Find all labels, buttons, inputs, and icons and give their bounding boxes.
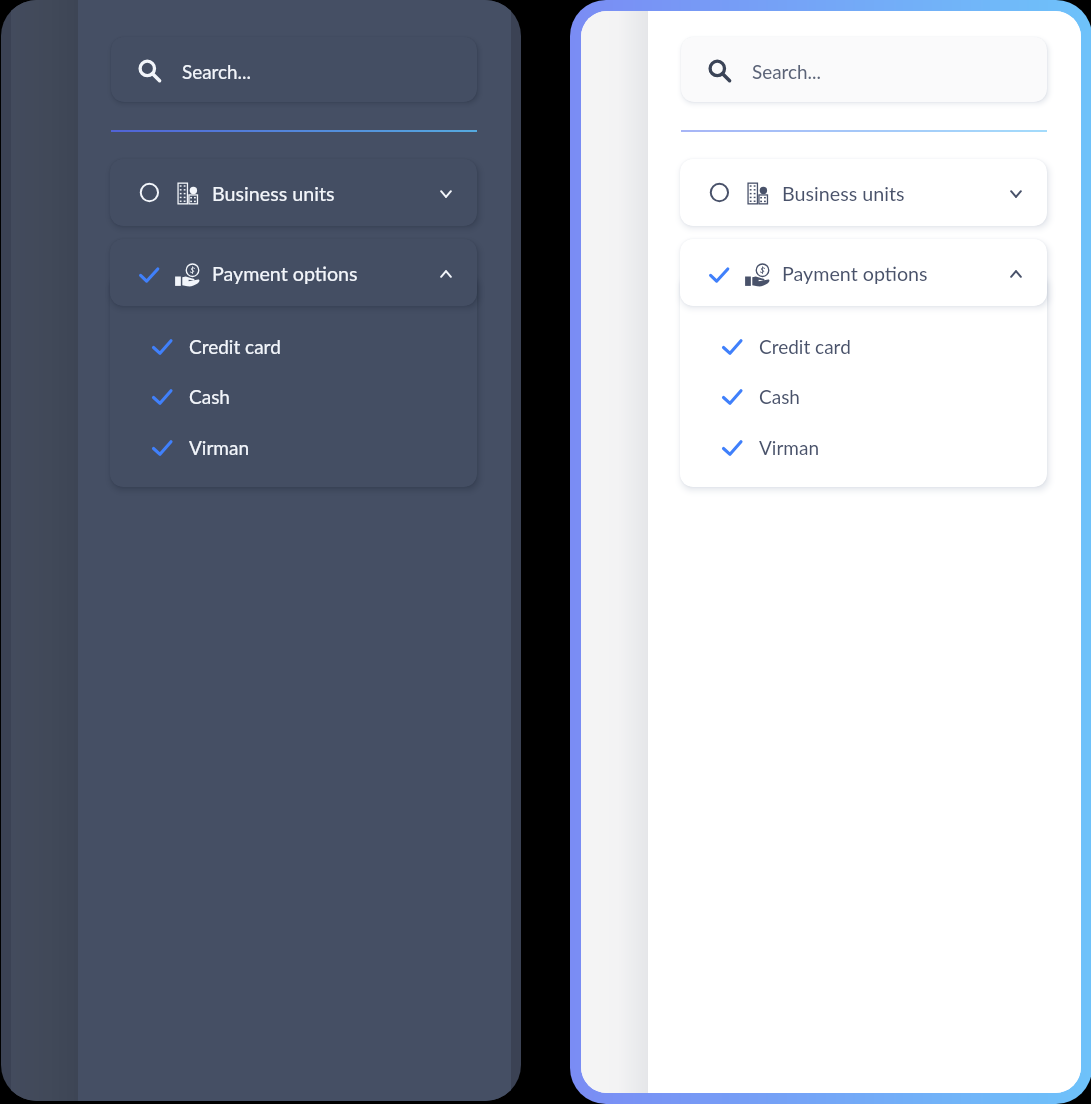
button[interactable]: Payment options	[110, 239, 477, 306]
staticText: Business units	[212, 182, 335, 206]
staticText: Cash	[189, 385, 230, 408]
button[interactable]: Payment options	[680, 239, 1047, 306]
button[interactable]: Virman	[110, 423, 477, 473]
button[interactable]: Expand	[426, 174, 466, 214]
staticText: Virman	[759, 436, 820, 459]
staticText: Virman	[189, 436, 250, 459]
staticText: Search...	[752, 60, 821, 83]
button[interactable]: Credit card	[110, 322, 477, 372]
button[interactable]: Business units	[110, 159, 477, 226]
staticText: Cash	[759, 385, 800, 408]
button[interactable]: Search	[111, 37, 477, 102]
button[interactable]: Collapse	[426, 254, 466, 294]
staticText: Business units	[782, 182, 905, 206]
button[interactable]: Cash	[680, 372, 1047, 422]
other: Search	[705, 53, 738, 86]
button[interactable]: Expand	[996, 174, 1036, 214]
button[interactable]: Business units	[680, 159, 1047, 226]
button[interactable]: Cash	[110, 372, 477, 422]
button[interactable]: Collapse	[996, 254, 1036, 294]
other: Search	[135, 53, 168, 86]
staticText: Credit card	[759, 335, 851, 358]
staticText: Payment options	[212, 262, 358, 286]
button[interactable]: Search	[681, 37, 1047, 102]
button[interactable]: Virman	[680, 423, 1047, 473]
staticText: Payment options	[782, 262, 928, 286]
staticText: Search...	[182, 60, 251, 83]
button[interactable]: Credit card	[680, 322, 1047, 372]
staticText: Credit card	[189, 335, 281, 358]
